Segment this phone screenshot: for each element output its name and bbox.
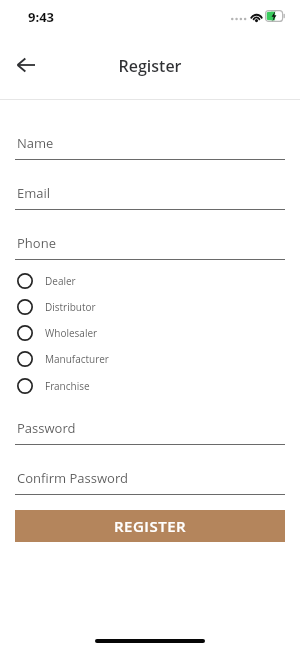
- staticText: 9:43: [28, 8, 54, 26]
- button[interactable]: Franchise: [0, 373, 300, 399]
- staticText: Phone: [17, 234, 56, 252]
- button[interactable]: Wholesaler: [0, 320, 300, 346]
- button[interactable]: Back: [9, 48, 43, 82]
- staticText: Dealer: [45, 274, 76, 288]
- button[interactable]: Dealer: [0, 268, 300, 294]
- staticText: Register: [0, 55, 300, 77]
- staticText: Manufacturer: [45, 352, 109, 366]
- staticText: REGISTER: [114, 516, 187, 536]
- button[interactable]: Phone: [0, 234, 300, 260]
- button[interactable]: Email: [0, 184, 300, 210]
- staticText: Distributor: [45, 300, 96, 314]
- button[interactable]: Name: [0, 134, 300, 160]
- button[interactable]: Distributor: [0, 294, 300, 320]
- staticText: Wholesaler: [45, 326, 98, 340]
- staticText: Confirm Password: [17, 469, 128, 487]
- staticText: Email: [17, 184, 51, 202]
- staticText: Franchise: [45, 379, 90, 393]
- staticText: Name: [17, 134, 54, 152]
- button[interactable]: Confirm Password: [0, 469, 300, 495]
- staticText: Password: [17, 419, 76, 437]
- button[interactable]: Password: [0, 419, 300, 445]
- button[interactable]: Manufacturer: [0, 346, 300, 372]
- button[interactable]: REGISTER: [15, 510, 285, 542]
